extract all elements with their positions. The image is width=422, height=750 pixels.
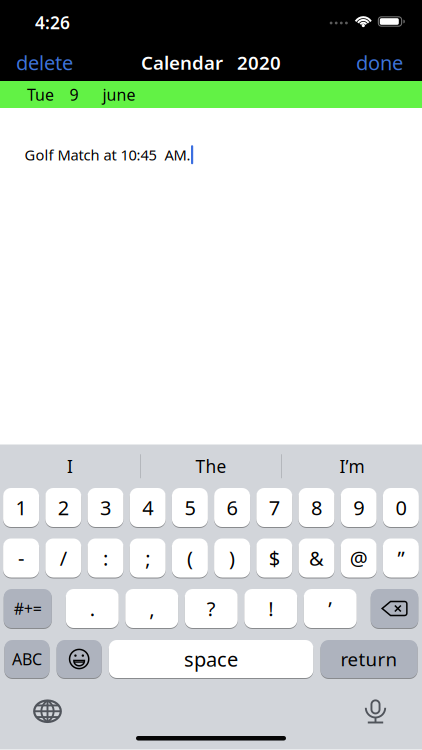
staticText: - [18, 545, 24, 571]
button[interactable]: @ [341, 538, 377, 577]
staticText: 2 [58, 494, 69, 521]
staticText: 5 [184, 494, 195, 521]
button[interactable]: ( [172, 538, 208, 577]
button[interactable]: ; [130, 538, 166, 577]
button[interactable]: : [87, 538, 123, 577]
staticText: 4 [142, 494, 153, 521]
staticText: 3 [100, 494, 111, 521]
staticText: 6 [227, 494, 238, 521]
staticText: $ [269, 545, 280, 571]
staticText: @ [350, 545, 368, 571]
staticText: I [67, 455, 73, 478]
button[interactable]: 1 [3, 488, 39, 527]
staticText: 0 [395, 494, 406, 521]
button[interactable]: 4 [130, 488, 166, 527]
staticText: 8 [311, 494, 322, 521]
button[interactable]: ABC [4, 640, 49, 678]
button[interactable]: delete [0, 49, 73, 76]
staticText: delete [16, 49, 73, 76]
button[interactable]: $ [256, 538, 292, 577]
button[interactable]: ’ [304, 589, 357, 628]
button[interactable]: Next keyboard [0, 699, 62, 723]
staticText: : [103, 545, 108, 571]
button[interactable]: ” [383, 538, 419, 577]
staticText: The [195, 455, 226, 478]
button[interactable]: done [356, 49, 422, 76]
staticText: ” [397, 545, 404, 571]
staticText: june [102, 84, 135, 105]
staticText: ? [207, 595, 216, 622]
staticText: space [184, 646, 238, 672]
staticText: ’ [328, 595, 332, 622]
button[interactable]: / [45, 538, 81, 577]
button[interactable]: The [141, 445, 281, 488]
button[interactable]: . [66, 589, 119, 628]
staticText: / [60, 545, 67, 571]
button[interactable]: 3 [87, 488, 123, 527]
staticText: ! [268, 595, 273, 622]
button[interactable]: #+= [4, 589, 52, 628]
staticText: ( [187, 545, 193, 571]
button[interactable]: , [125, 589, 178, 628]
button[interactable]: ) [214, 538, 250, 577]
staticText: Tue [27, 84, 54, 105]
staticText: return [341, 647, 398, 671]
button[interactable]: I’m [282, 445, 422, 488]
button[interactable]: 2 [45, 488, 81, 527]
button[interactable]: 9 [341, 488, 377, 527]
button[interactable]: I [0, 445, 140, 488]
staticText: 9 [353, 494, 364, 521]
button[interactable]: 8 [298, 488, 334, 527]
staticText: , [149, 595, 154, 622]
button[interactable]: ? [185, 589, 238, 628]
staticText: 1 [16, 494, 27, 521]
staticText: & [309, 545, 324, 571]
staticText: ) [229, 545, 235, 571]
button[interactable]: ! [244, 589, 297, 628]
button[interactable]: 0 [383, 488, 419, 527]
button[interactable]: Dictation [365, 699, 422, 723]
button[interactable]: space [109, 640, 313, 678]
button[interactable]: 6 [214, 488, 250, 527]
staticText: 2020 [237, 50, 281, 75]
staticText: 9 [69, 84, 78, 105]
button[interactable]: & [298, 538, 334, 577]
staticText: Golf Match at 10:45 AM. [24, 145, 190, 164]
staticText: Calendar [141, 50, 223, 75]
button[interactable]: Emoji [57, 640, 102, 678]
staticText: I’m [339, 455, 364, 478]
button[interactable]: 7 [256, 488, 292, 527]
button[interactable]: Delete [371, 589, 418, 628]
staticText: #+= [14, 598, 42, 619]
staticText: 7 [269, 494, 280, 521]
button[interactable]: 5 [172, 488, 208, 527]
button[interactable]: - [3, 538, 39, 577]
staticText: done [356, 49, 403, 76]
staticText: ; [145, 545, 150, 571]
staticText: . [90, 595, 95, 622]
button[interactable]: return [321, 640, 418, 678]
staticText: 4:26 [35, 11, 70, 34]
staticText: ABC [12, 648, 42, 670]
